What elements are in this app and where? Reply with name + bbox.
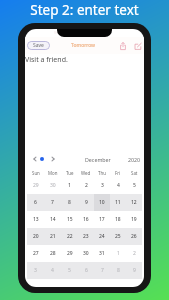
button[interactable]: 17 — [94, 211, 110, 228]
staticText: 11 — [115, 199, 121, 206]
staticText: Sat — [131, 170, 138, 176]
staticText: 27 — [33, 250, 39, 257]
staticText: 18 — [115, 216, 121, 223]
button[interactable]: 31 — [94, 245, 110, 262]
button[interactable]: 3 — [27, 262, 44, 279]
staticText: 22 — [67, 233, 73, 240]
staticText: 1 — [68, 182, 71, 189]
button[interactable]: 16 — [78, 211, 94, 228]
button[interactable]: 2 — [126, 245, 142, 262]
staticText: 16 — [83, 216, 89, 223]
staticText: 13 — [33, 216, 39, 223]
staticText: 7 — [51, 199, 54, 206]
staticText: 9 — [133, 267, 136, 274]
button[interactable]: 30 — [44, 177, 61, 194]
staticText: 12 — [131, 199, 137, 206]
button[interactable]: 29 — [61, 245, 78, 262]
staticText: 10 — [99, 199, 105, 206]
staticText: Visit a friend. — [25, 55, 68, 65]
button[interactable]: 19 — [126, 211, 142, 228]
button[interactable]: 13 — [27, 211, 44, 228]
staticText: Tue — [66, 170, 74, 176]
staticText: Tomorrow — [71, 42, 96, 49]
button[interactable]: 2 — [78, 177, 94, 194]
button[interactable]: 22 — [61, 228, 78, 245]
staticText: 19 — [131, 216, 137, 223]
staticText: 6 — [85, 267, 88, 274]
staticText: 30 — [83, 250, 89, 257]
button[interactable]: 1 — [110, 245, 126, 262]
button[interactable]: 12 — [126, 194, 142, 211]
button[interactable]: Share — [118, 41, 128, 51]
button[interactable]: Save — [27, 41, 50, 50]
button[interactable]: 9 — [78, 194, 94, 211]
button[interactable]: 5 — [61, 262, 78, 279]
staticText: 9:41 — [54, 30, 63, 36]
button[interactable]: 6 — [78, 262, 94, 279]
button[interactable]: 11 — [110, 194, 126, 211]
button[interactable]: 20 — [27, 228, 44, 245]
button[interactable]: 7 — [94, 262, 110, 279]
staticText: 15 — [67, 216, 73, 223]
staticText: 6 — [34, 199, 37, 206]
staticText: 1 — [117, 250, 120, 257]
button[interactable]: 24 — [94, 228, 110, 245]
button[interactable]: 21 — [44, 228, 61, 245]
button[interactable]: 25 — [110, 228, 126, 245]
button[interactable]: Today — [40, 157, 44, 161]
button[interactable]: 9 — [126, 262, 142, 279]
button[interactable]: 8 — [110, 262, 126, 279]
staticText: 4 — [51, 267, 54, 274]
staticText: 29 — [33, 182, 39, 189]
staticText: Thu — [98, 170, 106, 176]
button[interactable]: 8 — [61, 194, 78, 211]
button[interactable]: 4 — [110, 177, 126, 194]
staticText: 8 — [117, 267, 120, 274]
button[interactable]: Next month — [49, 155, 57, 163]
staticText: 30 — [50, 182, 56, 189]
button[interactable]: 3 — [94, 177, 110, 194]
staticText: 31 — [99, 250, 105, 257]
staticText: 2020 — [128, 156, 141, 163]
staticText: 17 — [99, 216, 105, 223]
staticText: 4 — [117, 182, 120, 189]
staticText: 21 — [50, 233, 56, 240]
button[interactable]: 5 — [126, 177, 142, 194]
staticText: Step 2: enter text — [0, 1, 169, 19]
staticText: 2 — [85, 182, 88, 189]
button[interactable]: 23 — [78, 228, 94, 245]
staticText: 29 — [67, 250, 73, 257]
staticText: 25 — [115, 233, 121, 240]
button[interactable]: 18 — [110, 211, 126, 228]
button[interactable]: New note — [133, 41, 143, 51]
staticText: 3 — [34, 267, 37, 274]
staticText: 8 — [68, 199, 71, 206]
button[interactable]: 1 — [61, 177, 78, 194]
button[interactable]: 10 — [94, 194, 110, 211]
button[interactable]: 29 — [27, 177, 44, 194]
button[interactable]: 4 — [44, 262, 61, 279]
staticText: Sun — [32, 170, 40, 176]
staticText: Fri — [115, 170, 121, 176]
staticText: 5 — [133, 182, 136, 189]
button[interactable]: Tomorrow — [71, 42, 96, 49]
staticText: 3 — [101, 182, 104, 189]
button[interactable]: 14 — [44, 211, 61, 228]
staticText: 9 — [85, 199, 88, 206]
staticText: 24 — [99, 233, 105, 240]
staticText: Save — [33, 42, 44, 49]
button[interactable]: 7 — [44, 194, 61, 211]
button[interactable]: 6 — [27, 194, 44, 211]
button[interactable]: 27 — [27, 245, 44, 262]
staticText: 26 — [131, 233, 137, 240]
button[interactable]: 26 — [126, 228, 142, 245]
staticText: Mon — [48, 170, 58, 176]
button[interactable]: 28 — [44, 245, 61, 262]
staticText: 7 — [101, 267, 104, 274]
button[interactable]: 15 — [61, 211, 78, 228]
button[interactable]: 30 — [78, 245, 94, 262]
staticText: Wed — [81, 170, 91, 176]
staticText: 5 — [68, 267, 71, 274]
staticText: 14 — [50, 216, 56, 223]
button[interactable]: Previous month — [31, 155, 39, 163]
